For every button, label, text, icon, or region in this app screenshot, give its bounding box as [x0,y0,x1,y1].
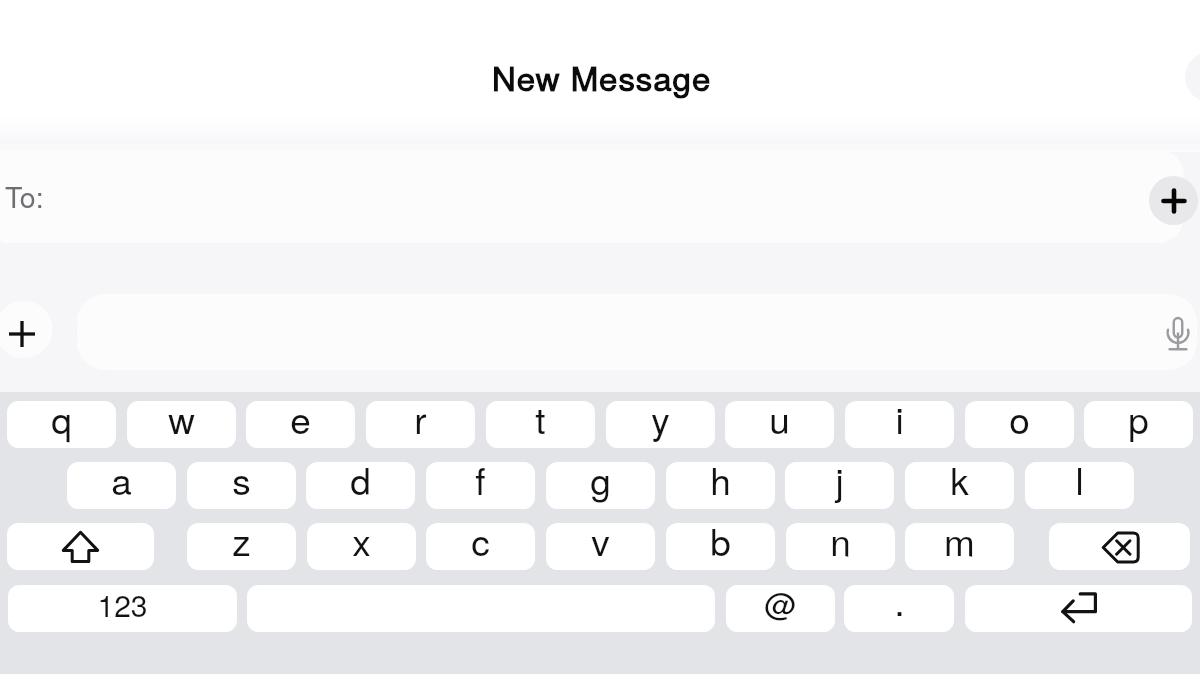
button[interactable]: q [7,401,116,448]
staticText: y [651,386,670,446]
staticText: b [710,508,731,568]
button[interactable]: l [1025,462,1134,509]
button[interactable]: f [426,462,535,509]
staticText: i [895,386,904,446]
button[interactable]: 123 [8,585,237,632]
staticText: j [835,447,844,507]
staticText: g [590,447,611,507]
staticText: z [232,508,251,568]
button[interactable]: . [844,585,954,632]
button[interactable]: v [546,523,655,570]
button[interactable]: Backspace [1049,523,1190,570]
button[interactable]: u [725,401,834,448]
staticText: s [232,447,251,507]
staticText: w [168,386,195,446]
button[interactable]: Return [965,585,1192,632]
staticText: 123 [97,569,148,629]
button[interactable]: c [426,523,535,570]
button[interactable]: o [965,401,1074,448]
button[interactable]: k [905,462,1014,509]
button[interactable]: e [246,401,355,448]
button[interactable]: p [1084,401,1193,448]
button[interactable]: y [606,401,715,448]
staticText: a [111,447,132,507]
staticText: o [1009,386,1030,446]
button[interactable]: d [306,462,415,509]
button[interactable]: z [187,523,296,570]
button[interactable]: Add attachment [0,275,80,390]
staticText: x [352,508,371,568]
staticText: c [471,508,490,568]
button[interactable]: a [67,462,176,509]
button[interactable]: @ [726,585,835,632]
button[interactable]: r [366,401,475,448]
staticText: q [51,386,72,446]
staticText: To: [5,168,44,218]
staticText: d [350,447,371,507]
staticText: f [475,447,486,507]
staticText: u [769,386,790,446]
staticText: p [1128,386,1149,446]
button[interactable]: Voice input [1158,316,1198,356]
staticText: t [535,386,546,446]
button[interactable]: j [785,462,894,509]
button[interactable]: n [786,523,895,570]
button[interactable]: i [845,401,954,448]
staticText: h [710,447,731,507]
staticText: n [830,508,851,568]
button[interactable]: h [666,462,775,509]
button[interactable]: w [127,401,236,448]
button[interactable]: x [307,523,416,570]
staticText: New Message [492,53,712,100]
staticText: @ [764,568,797,628]
staticText: e [290,386,311,446]
button[interactable]: Add contact [1149,176,1198,225]
button[interactable] [77,294,1197,370]
staticText: . [894,568,905,628]
button[interactable]: Shift [7,523,154,570]
staticText: m [944,508,975,568]
button[interactable]: s [187,462,296,509]
button[interactable]: To: [0,150,1184,243]
button[interactable]: b [666,523,775,570]
button[interactable]: t [486,401,595,448]
staticText: v [591,508,610,568]
staticText: k [950,447,969,507]
staticText: r [414,386,427,446]
button[interactable]: m [905,523,1014,570]
button[interactable]: g [546,462,655,509]
staticText: l [1075,447,1084,507]
